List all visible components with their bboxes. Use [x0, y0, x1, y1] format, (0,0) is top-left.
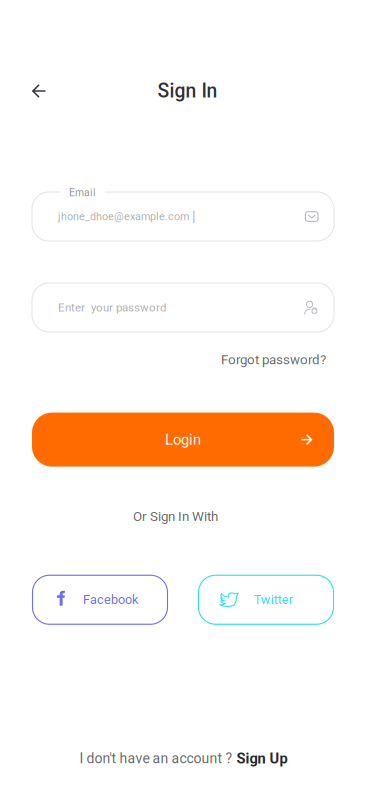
staticText: Sign In	[157, 80, 217, 102]
button[interactable]: Back	[23, 75, 55, 107]
button[interactable]: Forgot password?	[221, 352, 326, 368]
button[interactable]: Login	[32, 413, 334, 467]
staticText: Forgot password?	[221, 352, 326, 368]
staticText: Or Sign In With	[133, 509, 218, 524]
button[interactable]: I don't have an account ?	[79, 750, 287, 767]
button[interactable]: Facebook	[32, 575, 167, 624]
staticText: Facebook	[83, 592, 138, 607]
staticText: Sign Up	[236, 750, 287, 767]
staticText: |	[192, 208, 196, 225]
staticText: jhone_dhoe@example.com	[58, 210, 189, 223]
staticText: Email	[69, 186, 96, 199]
staticText: Login	[165, 431, 201, 448]
staticText: Twitter	[254, 592, 293, 607]
button[interactable]: Twitter	[198, 575, 333, 624]
staticText: Enter your password	[58, 301, 166, 314]
staticText: I don't have an account ?	[79, 750, 232, 767]
